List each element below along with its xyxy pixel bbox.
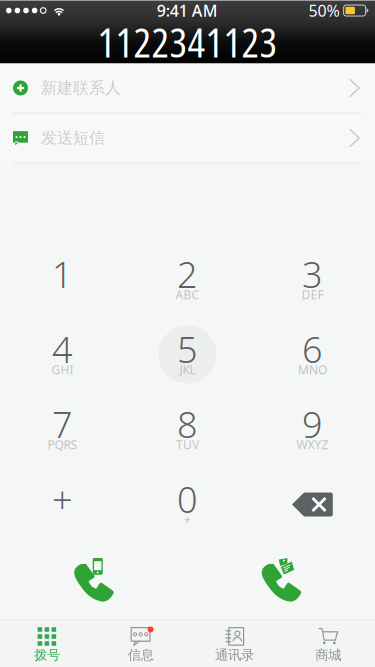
staticText: 1122341123 <box>97 15 277 69</box>
staticText: 9:41 AM <box>157 0 218 21</box>
button[interactable]: 8 <box>125 392 250 467</box>
button[interactable]: 0 <box>125 467 250 542</box>
button[interactable]: 9 <box>250 392 375 467</box>
staticText: 0 <box>177 475 198 523</box>
staticText: 6 <box>302 325 323 373</box>
staticText: 新建联系人 <box>41 78 121 98</box>
button[interactable]: 3 <box>250 242 375 317</box>
staticText: MNO <box>298 361 327 377</box>
button[interactable]: 拨号 <box>0 619 94 667</box>
button[interactable]: 4 <box>0 317 125 392</box>
button[interactable]: 1 <box>0 242 125 317</box>
button[interactable]: Call with mobile <box>0 558 187 603</box>
button[interactable]: 7 <box>0 392 125 467</box>
staticText: 1 <box>52 250 73 298</box>
staticText: 50% <box>309 0 340 21</box>
staticText: 4 <box>52 325 73 373</box>
staticText: TUV <box>176 436 199 452</box>
button[interactable]: + <box>0 467 125 542</box>
staticText: 3 <box>302 250 323 298</box>
staticText: GHI <box>51 361 73 377</box>
staticText: DEF <box>301 286 323 302</box>
staticText: 2 <box>177 250 198 298</box>
staticText: + <box>52 475 73 523</box>
staticText: 拨号 <box>34 647 60 663</box>
staticText: 信息 <box>128 647 154 663</box>
button[interactable]: 2 <box>125 242 250 317</box>
button[interactable]: 5 <box>125 317 250 392</box>
button[interactable]: 6 <box>250 317 375 392</box>
staticText: JKL <box>179 361 195 377</box>
staticText: 7 <box>52 400 73 448</box>
button[interactable]: Delete <box>250 467 375 542</box>
staticText: WXYZ <box>296 436 328 452</box>
staticText: 9 <box>302 400 323 448</box>
staticText: 8 <box>177 400 198 448</box>
staticText: 通讯录 <box>215 647 254 663</box>
button[interactable]: 发送短信 <box>0 113 375 163</box>
button[interactable]: 信息 <box>94 619 188 667</box>
staticText: 5 <box>177 325 198 373</box>
staticText: PQRS <box>47 436 77 452</box>
staticText: ABC <box>175 286 199 302</box>
staticText: + <box>184 511 191 527</box>
button[interactable]: 通讯录 <box>187 619 281 667</box>
button[interactable]: 商城 <box>281 619 375 667</box>
button[interactable]: Call with carrier plan <box>187 558 375 603</box>
staticText: 商城 <box>315 647 341 663</box>
staticText: 发送短信 <box>41 128 105 148</box>
button[interactable]: 新建联系人 <box>0 63 375 113</box>
